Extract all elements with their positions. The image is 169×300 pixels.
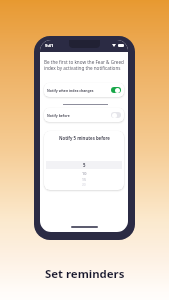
staticText: Be the first to know the Fear & Greed in… [44, 59, 124, 72]
staticText: Set reminders [45, 266, 125, 282]
staticText: Notify 5 minutes before [59, 135, 110, 141]
button[interactable]: Notify before [44, 108, 124, 122]
button[interactable]: Notify when index changes [44, 83, 124, 97]
button[interactable]: Toggle off [111, 112, 121, 118]
staticText: 9:41 [45, 43, 54, 49]
staticText: 15 [82, 177, 86, 182]
button[interactable]: Toggle on [111, 87, 121, 93]
staticText: 5 [83, 162, 86, 168]
staticText: Notify before [47, 113, 70, 118]
staticText: Notify when index changes [47, 88, 94, 93]
button[interactable]: Notify 5 minutes before [44, 131, 124, 190]
staticText: 20 [82, 183, 86, 187]
staticText: 10 [82, 171, 87, 176]
